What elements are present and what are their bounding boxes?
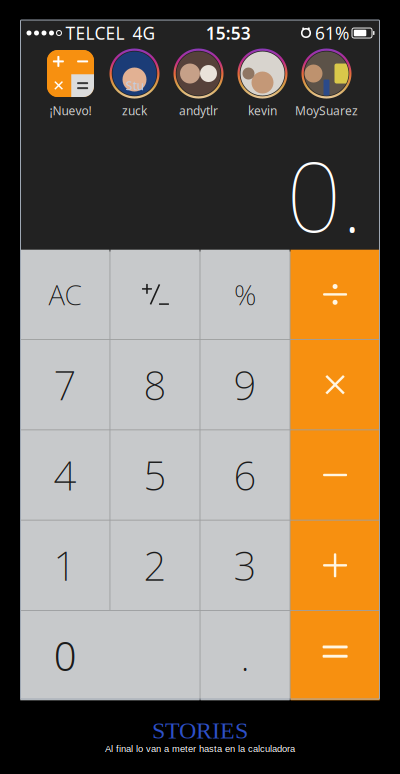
staticText: %: [234, 275, 256, 313]
staticText: kevin: [248, 102, 277, 118]
staticText: 7: [53, 357, 76, 412]
button[interactable]: 1: [20, 521, 109, 610]
staticText: MoySuarez: [295, 102, 358, 118]
button[interactable]: AC: [20, 250, 109, 339]
button[interactable]: 3: [200, 521, 290, 610]
staticText: STORIES: [152, 717, 248, 744]
button[interactable]: 6: [200, 430, 290, 520]
staticText: 2: [143, 538, 166, 593]
staticText: AC: [48, 275, 81, 313]
staticText: 0: [54, 629, 77, 682]
staticText: TELCEL: [65, 21, 124, 44]
button[interactable]: andytlr: [166, 48, 230, 118]
staticText: ¡Nuevo!: [49, 102, 91, 118]
staticText: andytlr: [179, 102, 218, 118]
button[interactable]: 2: [110, 521, 200, 610]
staticText: Al final lo van a meter hasta en la calc…: [105, 744, 295, 754]
button[interactable]: Multiply: [290, 340, 380, 429]
button[interactable]: kevin: [230, 48, 294, 118]
staticText: 4G: [132, 21, 155, 44]
staticText: 6: [233, 448, 256, 502]
button[interactable]: Plus minus: [110, 250, 200, 339]
staticText: 0.: [286, 131, 362, 258]
staticText: 4: [53, 448, 76, 502]
staticText: Stu: [125, 78, 143, 93]
button[interactable]: 7: [20, 340, 109, 429]
staticText: 3: [233, 538, 256, 593]
staticText: 15:53: [206, 21, 251, 44]
staticText: zuck: [122, 102, 147, 118]
button[interactable]: .: [200, 611, 290, 700]
button[interactable]: Stu: [102, 48, 166, 118]
button[interactable]: %: [200, 250, 290, 339]
staticText: 1: [53, 538, 76, 593]
staticText: 5: [143, 448, 166, 502]
button[interactable]: Add: [290, 521, 380, 610]
button[interactable]: 0: [20, 611, 200, 700]
staticText: .: [241, 628, 250, 683]
staticText: 9: [233, 357, 256, 412]
button[interactable]: MoySuarez: [294, 48, 358, 118]
button[interactable]: Equals: [290, 611, 380, 700]
staticText: 8: [143, 357, 166, 412]
button[interactable]: 9: [200, 340, 290, 429]
button[interactable]: 5: [110, 430, 200, 520]
button[interactable]: Subtract: [290, 430, 380, 520]
staticText: 61%: [315, 21, 349, 44]
button[interactable]: 4: [20, 430, 109, 520]
button[interactable]: Divide: [290, 250, 380, 339]
button[interactable]: 8: [110, 340, 200, 429]
button[interactable]: ✕: [38, 48, 102, 118]
staticText: ✕: [52, 77, 64, 94]
